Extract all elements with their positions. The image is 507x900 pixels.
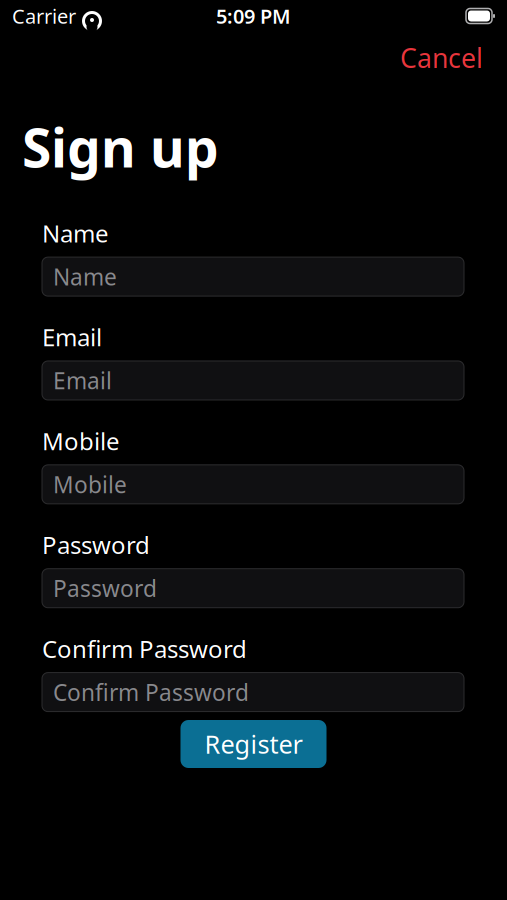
staticText: Confirm Password xyxy=(42,633,247,665)
staticText: Email xyxy=(42,321,102,353)
staticText: Confirm Password xyxy=(53,677,249,707)
button[interactable]: Name xyxy=(42,257,464,296)
staticText: Password xyxy=(53,573,157,603)
button[interactable]: Cancel xyxy=(388,34,495,81)
staticText: 5:09 PM xyxy=(216,3,291,29)
staticText: Sign up xyxy=(22,111,219,182)
staticText: Name xyxy=(53,262,117,292)
staticText: Name xyxy=(42,217,109,249)
button[interactable]: Mobile xyxy=(42,465,464,504)
button[interactable]: Email xyxy=(42,361,464,400)
staticText: Carrier xyxy=(12,3,76,29)
button[interactable]: Register xyxy=(180,720,326,768)
staticText: Email xyxy=(53,365,112,395)
button[interactable]: Password xyxy=(42,569,464,608)
staticText: Cancel xyxy=(400,40,483,75)
button[interactable]: Confirm Password xyxy=(42,673,464,712)
staticText: Register xyxy=(204,727,302,761)
staticText: Password xyxy=(42,529,150,561)
staticText: Mobile xyxy=(53,469,127,499)
staticText: Mobile xyxy=(42,425,120,457)
